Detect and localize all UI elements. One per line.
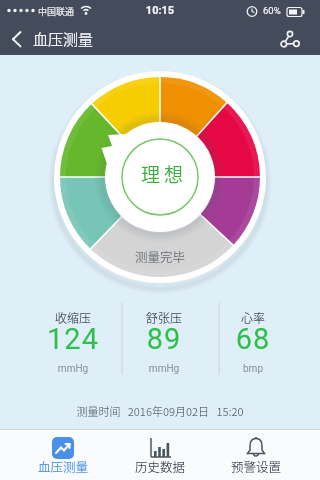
- button[interactable]: [14, 430, 114, 480]
- staticText: mmHg: [23, 363, 123, 375]
- staticText: 预警设置: [206, 457, 306, 475]
- staticText: 血压测量: [13, 457, 113, 475]
- button[interactable]: [206, 430, 306, 480]
- staticText: 60%: [263, 5, 281, 16]
- staticText: bmp: [203, 363, 303, 375]
- staticText: 10:15: [144, 4, 176, 17]
- staticText: 血压测量: [33, 28, 94, 50]
- staticText: 89: [114, 322, 214, 356]
- button[interactable]: [274, 26, 306, 58]
- staticText: 124: [23, 322, 123, 356]
- staticText: 理 想: [122, 160, 202, 188]
- staticText: 测量时间 2016年09月02日 15:20: [0, 403, 320, 419]
- button[interactable]: [6, 26, 32, 52]
- staticText: 68: [203, 322, 303, 356]
- staticText: 中国联通: [38, 5, 75, 18]
- button[interactable]: [110, 430, 210, 480]
- staticText: 收缩压: [23, 309, 123, 326]
- staticText: 心率: [203, 309, 303, 326]
- staticText: 舒张压: [114, 309, 214, 326]
- staticText: mmHg: [114, 363, 214, 375]
- staticText: 测量完毕: [110, 247, 210, 265]
- staticText: 历史数据: [110, 457, 210, 475]
